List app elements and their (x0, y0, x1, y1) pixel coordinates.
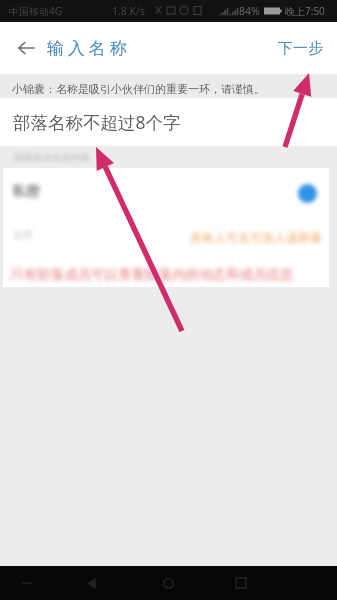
button[interactable]: Home (148, 566, 188, 600)
staticText: 私密 (12, 183, 40, 201)
staticText: 部落名称不超过8个字 (13, 110, 181, 134)
staticText: 下一步 (278, 39, 323, 58)
staticText: 部落基本信息完善 (14, 152, 90, 164)
staticText: 小锦囊：名称是吸引小伙伴们的重要一环，请谨慎。 (12, 82, 265, 96)
button[interactable]: Recents (221, 566, 261, 600)
staticText: 所有人可见可加入该部落 (190, 230, 322, 245)
staticText: 晚上7:50 (285, 4, 325, 18)
staticText: 中国移动4G (9, 4, 62, 18)
staticText: 输入名称 (47, 38, 131, 59)
button[interactable]: Back (71, 566, 111, 600)
staticText: 84% (239, 4, 260, 18)
button[interactable]: 返回 (7, 29, 45, 67)
button[interactable] (3, 168, 329, 287)
staticText: 公开 (13, 228, 33, 241)
staticText: 只有部落成员可以查看部落内的动态和成员信息 (10, 266, 294, 283)
button[interactable]: 部落名称不超过8个字 (0, 98, 337, 146)
button[interactable]: 下一步 (264, 27, 337, 70)
staticText: 1.8 K/s (112, 4, 145, 18)
